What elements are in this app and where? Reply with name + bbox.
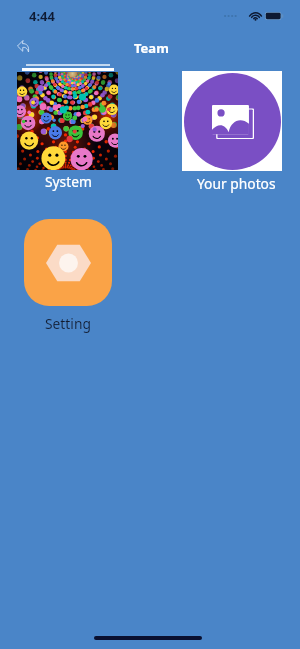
button[interactable]: System: [17, 72, 118, 170]
staticText: Your photos: [197, 174, 276, 193]
button[interactable]: Back: [8, 32, 34, 58]
button[interactable]: Setting: [24, 219, 112, 306]
staticText: 4:44: [29, 7, 55, 25]
staticText: System: [45, 172, 92, 191]
staticText: Setting: [45, 314, 91, 333]
staticText: Team: [134, 39, 169, 57]
button[interactable]: Your photos: [182, 71, 282, 171]
